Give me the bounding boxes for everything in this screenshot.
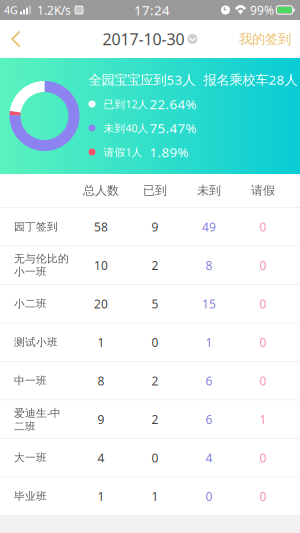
staticText: 1.2K/s: [37, 2, 71, 18]
staticText: 中一班: [14, 374, 47, 387]
button[interactable]: 爱迪生-中 二班: [0, 400, 300, 439]
staticText: 请假1人: [103, 145, 142, 159]
staticText: 2017-10-30: [102, 28, 184, 50]
staticText: 已到: [143, 183, 167, 198]
staticText: 0: [205, 488, 212, 504]
staticText: 园丁签到: [14, 220, 58, 233]
staticText: 2: [151, 411, 158, 427]
staticText: 10: [94, 257, 108, 273]
staticText: 已到12人: [103, 97, 148, 111]
button[interactable]: 返回: [0, 20, 39, 58]
staticText: 15: [202, 296, 216, 312]
staticText: 8: [97, 373, 104, 389]
staticText: 小二班: [14, 297, 47, 310]
staticText: 0: [151, 450, 158, 466]
staticText: 1.89%: [149, 143, 188, 161]
button[interactable]: 小二班: [0, 285, 300, 323]
staticText: 0: [259, 257, 266, 273]
staticText: 0: [259, 296, 266, 312]
staticText: 总人数: [83, 183, 119, 198]
button[interactable]: 无与伦比的 小一班: [0, 246, 300, 285]
button[interactable]: 中一班: [0, 362, 300, 400]
staticText: 测试小班: [14, 336, 58, 349]
staticText: 未到: [197, 183, 221, 198]
staticText: 4: [205, 450, 212, 466]
button[interactable]: 毕业班: [0, 477, 300, 516]
staticText: 请假: [251, 183, 275, 198]
staticText: 1: [205, 334, 212, 350]
staticText: 0: [259, 450, 266, 466]
staticText: 4G: [4, 3, 18, 17]
button[interactable]: 园丁签到: [0, 208, 300, 246]
staticText: 0: [151, 334, 158, 350]
staticText: 2: [151, 257, 158, 273]
button[interactable]: 我的签到: [230, 20, 300, 58]
staticText: 1: [97, 488, 104, 504]
button[interactable]: 2017-10-30: [102, 20, 197, 58]
staticText: 我的签到: [239, 31, 291, 47]
button[interactable]: 测试小班: [0, 323, 300, 362]
staticText: 全园宝宝应到53人 报名乘校车28人: [88, 71, 297, 88]
staticText: 爱迪生-中 二班: [14, 406, 61, 433]
staticText: 58: [94, 219, 108, 235]
staticText: 99%: [250, 2, 274, 18]
staticText: 无与伦比的 小一班: [14, 252, 69, 278]
staticText: 1: [97, 334, 104, 350]
staticText: 49: [202, 219, 216, 235]
staticText: 毕业班: [14, 490, 47, 503]
staticText: 6: [205, 411, 212, 427]
staticText: 0: [259, 334, 266, 350]
staticText: 6: [205, 373, 212, 389]
staticText: 未到40人: [103, 121, 148, 135]
staticText: 0: [259, 373, 266, 389]
staticText: 0: [259, 219, 266, 235]
staticText: 9: [97, 411, 104, 427]
staticText: 9: [151, 219, 158, 235]
staticText: 5: [151, 296, 158, 312]
staticText: 2: [151, 373, 158, 389]
staticText: 75.47%: [149, 119, 196, 137]
staticText: 0: [259, 488, 266, 504]
staticText: 17:24: [134, 1, 170, 19]
staticText: 20: [94, 296, 108, 312]
staticText: 4: [97, 450, 104, 466]
staticText: 8: [205, 257, 212, 273]
button[interactable]: 大一班: [0, 439, 300, 477]
staticText: 1: [259, 411, 266, 427]
staticText: 22.64%: [149, 95, 196, 113]
staticText: 1: [151, 488, 158, 504]
staticText: 大一班: [14, 451, 47, 464]
